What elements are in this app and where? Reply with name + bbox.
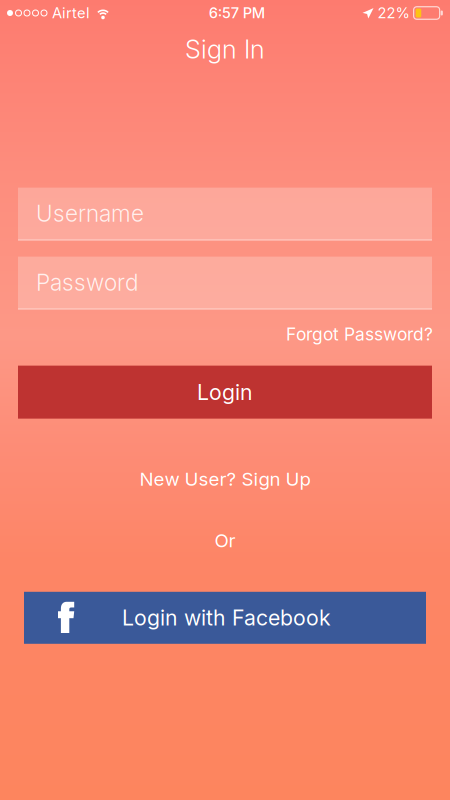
button[interactable]: Login with Facebook (24, 592, 426, 644)
staticText: Forgot Password? (286, 324, 433, 345)
staticText: Login (197, 379, 253, 405)
staticText: 6:57 PM (209, 4, 265, 22)
button[interactable]: Forgot Password? (286, 310, 450, 350)
button[interactable]: Login (18, 366, 432, 419)
staticText: Password (36, 269, 138, 296)
button[interactable]: New User? Sign Up (139, 465, 310, 493)
staticText: Login with Facebook (122, 605, 331, 631)
staticText: Airtel (52, 4, 90, 22)
staticText: Sign In (185, 34, 265, 65)
staticText: Username (36, 200, 144, 227)
staticText: New User? Sign Up (139, 468, 310, 490)
staticText: Or (214, 529, 235, 552)
staticText: 22% (377, 4, 409, 22)
